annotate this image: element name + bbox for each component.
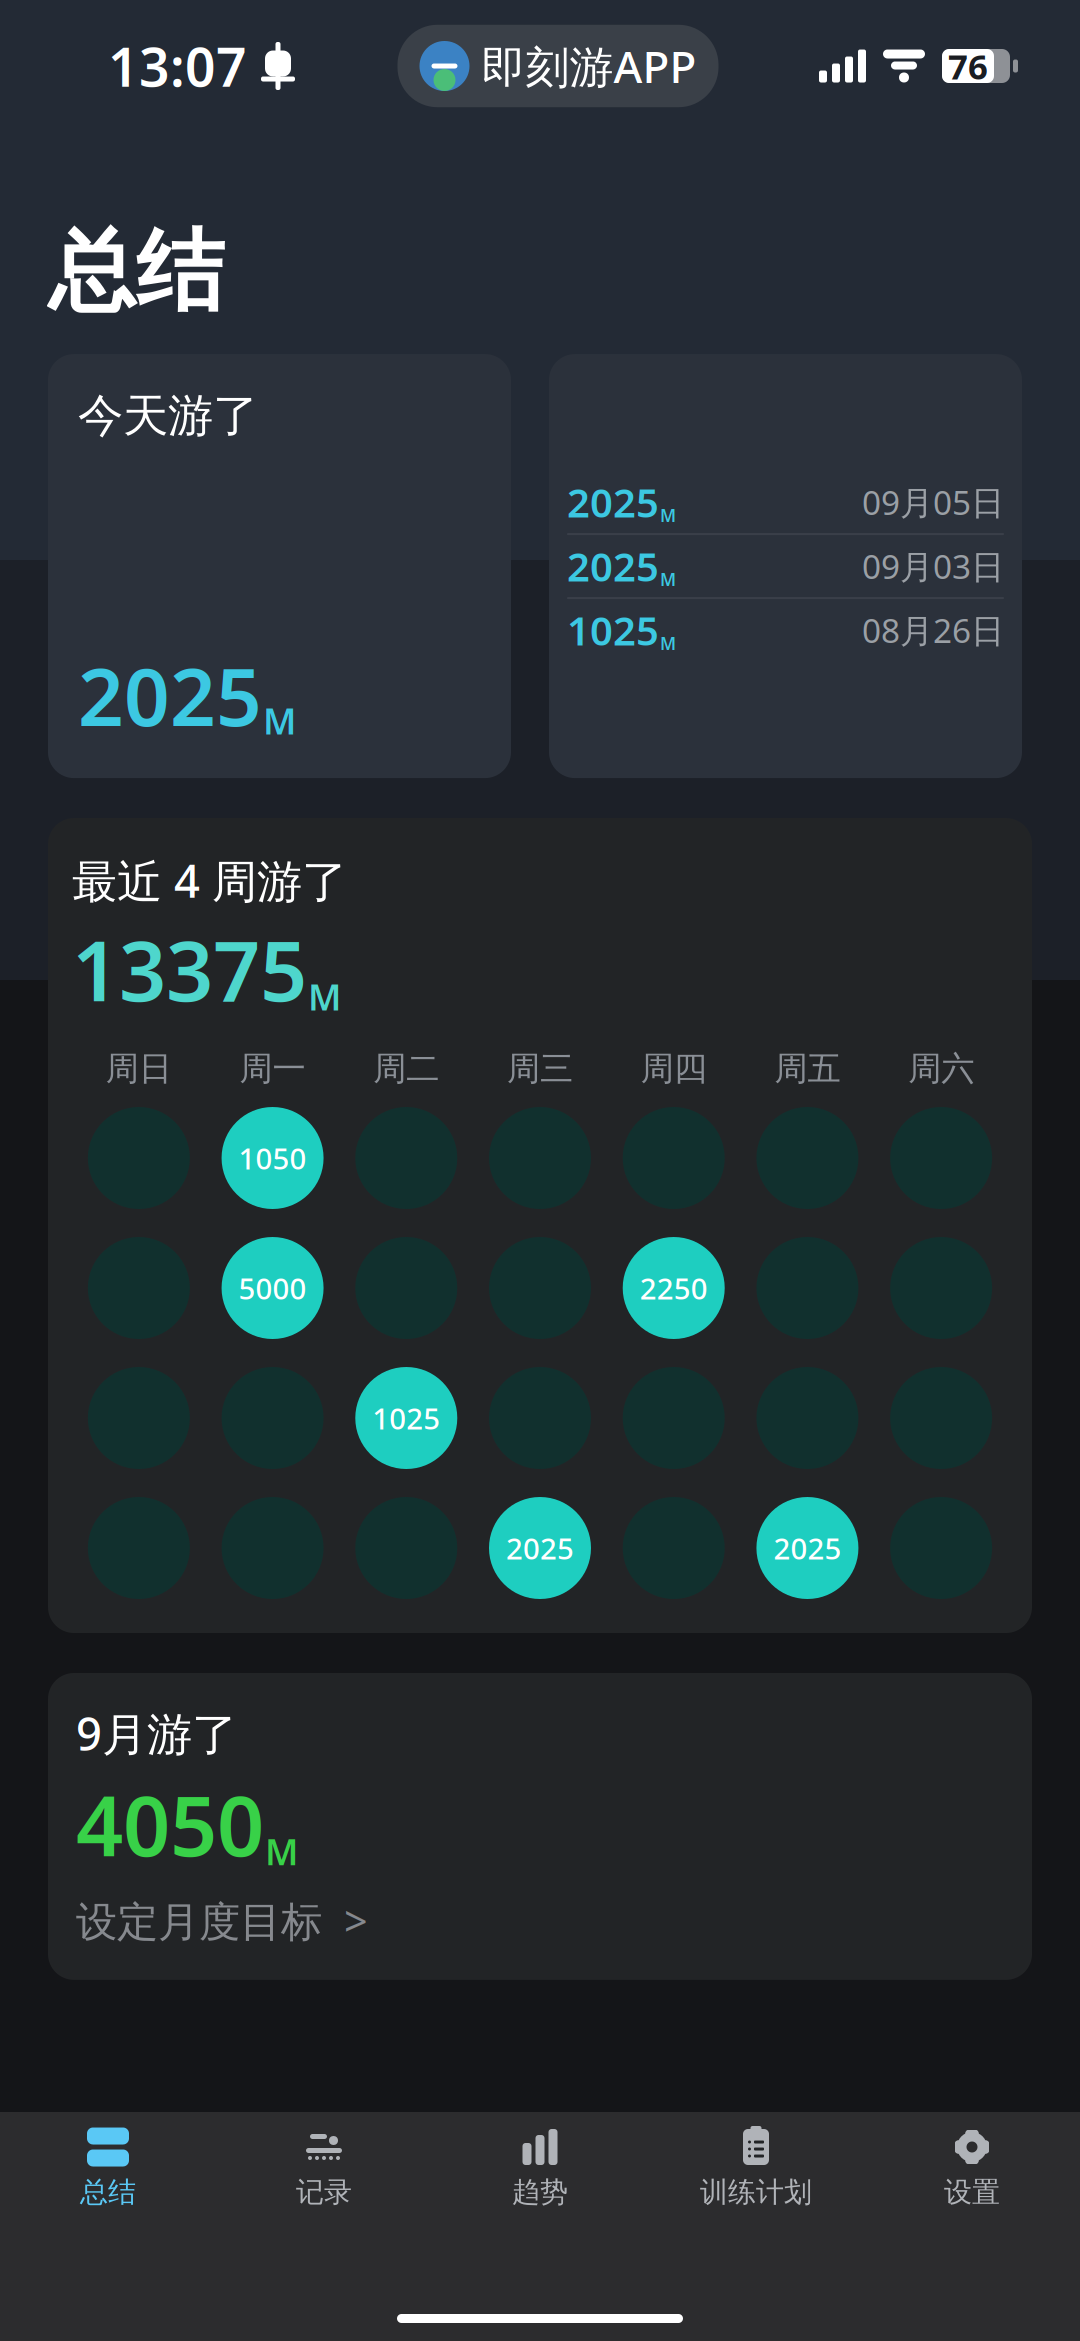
staticText: 周一	[240, 1048, 306, 1089]
staticText: 4050	[76, 1769, 264, 1879]
staticText: 09月03日	[862, 544, 1004, 588]
staticText: 记录	[296, 2175, 352, 2209]
button[interactable]: 记录	[216, 2112, 432, 2219]
staticText: M	[263, 697, 296, 744]
staticText: 76	[948, 43, 988, 89]
staticText: 总结	[48, 218, 224, 326]
staticText: 设定月度目标 >	[76, 1893, 368, 1948]
staticText: 最近 4 周游了	[72, 850, 347, 910]
staticText: M	[660, 504, 676, 527]
staticText: 2025	[567, 539, 659, 593]
staticText: 设置	[944, 2175, 1000, 2209]
staticText: 今天游了	[78, 388, 258, 444]
staticText: M	[265, 1827, 298, 1875]
staticText: 2025	[567, 475, 659, 529]
button[interactable]: 2025	[549, 535, 1022, 597]
staticText: 1025	[372, 1398, 440, 1437]
button[interactable]: 训练计划	[648, 2112, 864, 2219]
staticText: M	[308, 972, 341, 1020]
button[interactable]: 设定月度目标 >	[76, 1879, 368, 1952]
staticText: 周五	[774, 1048, 840, 1089]
button[interactable]: 趋势	[432, 2112, 648, 2219]
staticText: 9月游了	[76, 1703, 237, 1763]
staticText: 1025	[567, 603, 659, 657]
button[interactable]: 2025	[549, 471, 1022, 533]
staticText: 13375	[72, 914, 307, 1024]
staticText: 2025	[78, 642, 262, 748]
staticText: 周四	[641, 1048, 707, 1089]
staticText: 2025	[506, 1528, 574, 1567]
staticText: 5000	[239, 1268, 307, 1307]
staticText: 08月26日	[862, 608, 1004, 652]
staticText: M	[660, 568, 676, 591]
staticText: M	[660, 632, 676, 655]
staticText: 周日	[106, 1048, 172, 1089]
staticText: 09月05日	[862, 480, 1004, 524]
button[interactable]: 设置	[864, 2112, 1080, 2219]
staticText: 1050	[239, 1138, 307, 1177]
staticText: 13:07	[108, 31, 247, 101]
button[interactable]: 今天游了	[48, 354, 511, 778]
staticText: 训练计划	[700, 2175, 812, 2209]
staticText: 总结	[80, 2175, 136, 2209]
staticText: 周六	[908, 1048, 974, 1089]
staticText: 周三	[507, 1048, 573, 1089]
staticText: 周二	[373, 1048, 439, 1089]
staticText: 2025	[773, 1528, 841, 1567]
button[interactable]: 1025	[549, 599, 1022, 661]
button[interactable]: 总结	[0, 2112, 216, 2219]
staticText: 即刻游APP	[481, 37, 696, 95]
staticText: 2250	[640, 1268, 708, 1307]
staticText: 趋势	[512, 2175, 568, 2209]
